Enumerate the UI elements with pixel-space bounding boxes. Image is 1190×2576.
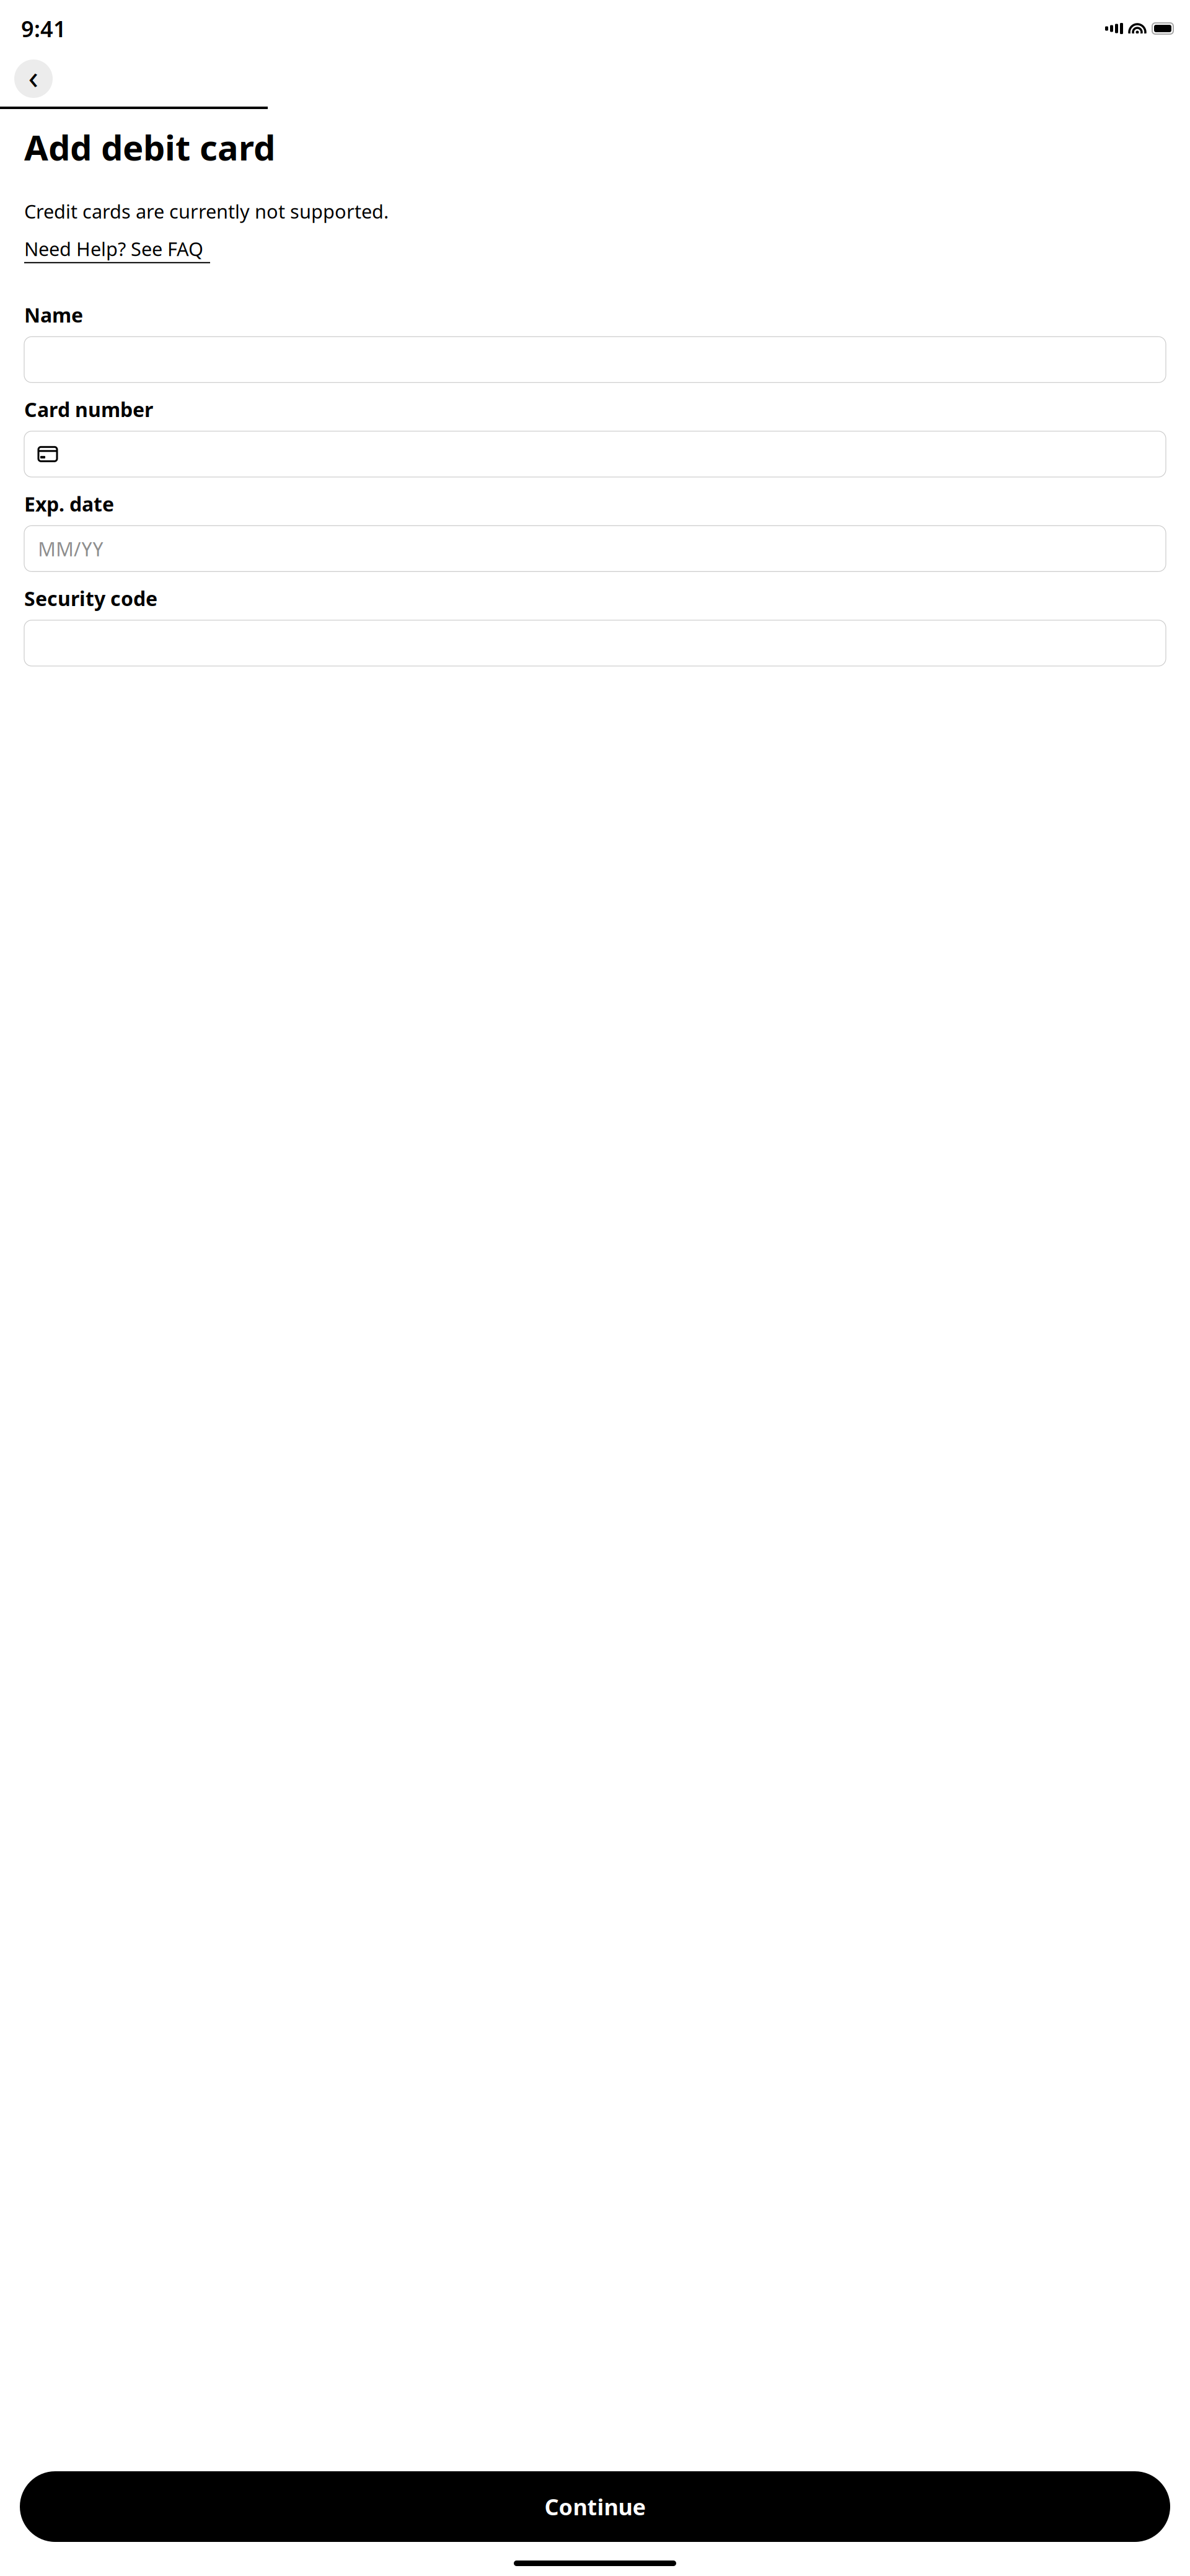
button[interactable]: Back (14, 59, 53, 98)
staticText: Add debit card (24, 124, 275, 170)
staticText: Card number (24, 396, 153, 422)
button[interactable]: Continue (20, 2471, 1170, 2542)
button[interactable] (24, 337, 1166, 383)
staticText: 9:41 (21, 14, 66, 43)
staticText: Credit cards are currently not supported… (24, 199, 389, 224)
staticText: Exp. date (24, 491, 114, 517)
button[interactable]: Need Help? See FAQ (24, 236, 210, 263)
staticText: MM/YY (38, 535, 104, 562)
staticText: ‹ (28, 54, 39, 98)
staticText: Security code (24, 585, 157, 611)
staticText: Name (24, 302, 83, 328)
button[interactable] (24, 620, 1166, 666)
staticText: Continue (544, 2492, 646, 2521)
button[interactable]: MM/YY (24, 526, 1166, 572)
button[interactable] (24, 431, 1166, 477)
staticText: Need Help? See FAQ (24, 236, 203, 261)
